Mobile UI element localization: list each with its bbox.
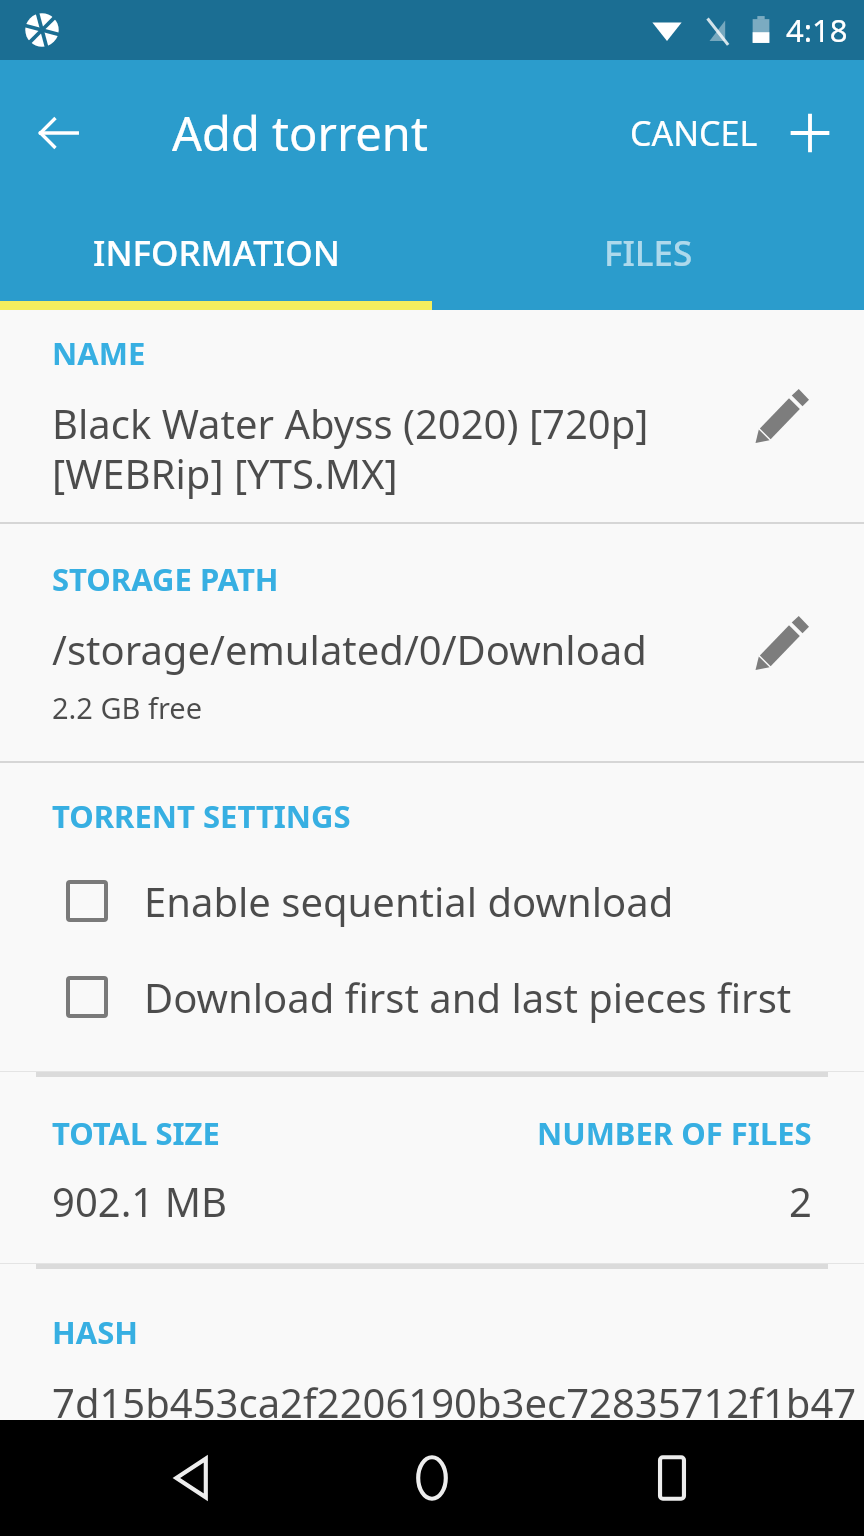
- button[interactable]: Recent apps: [624, 1430, 720, 1526]
- staticText: 7d15b453ca2f2206190b3ec72835712f1b4752: [52, 1375, 864, 1420]
- staticText: HASH: [52, 1311, 138, 1353]
- staticText: 902.1 MB: [52, 1174, 227, 1228]
- staticText: TOTAL SIZE: [52, 1112, 220, 1154]
- staticText: Black Water Abyss (2020) [720p] [WEBRip]…: [52, 396, 649, 501]
- staticText: 2.2 GB free: [52, 688, 203, 727]
- staticText: /storage/emulated/0/Download: [52, 622, 647, 676]
- button[interactable]: Back: [144, 1430, 240, 1526]
- staticText: FILES: [604, 229, 693, 277]
- staticText: 4:18: [786, 9, 848, 51]
- staticText: STORAGE PATH: [52, 558, 279, 600]
- button[interactable]: Add: [772, 95, 848, 171]
- button[interactable]: Home: [384, 1430, 480, 1526]
- staticText: NUMBER OF FILES: [537, 1112, 812, 1154]
- button[interactable]: STORAGE PATH: [0, 524, 864, 761]
- button[interactable]: Edit: [734, 368, 830, 464]
- staticText: Enable sequential download: [144, 874, 674, 928]
- staticText: INFORMATION: [93, 229, 340, 277]
- staticText: TORRENT SETTINGS: [52, 795, 351, 837]
- button[interactable]: FILES: [432, 205, 864, 301]
- button[interactable]: NAME: [0, 310, 864, 522]
- button[interactable]: Download first and last pieces first: [0, 949, 864, 1045]
- staticText: 2: [789, 1174, 812, 1228]
- staticText: CANCEL: [630, 110, 758, 156]
- staticText: Add torrent: [172, 101, 428, 165]
- button[interactable]: INFORMATION: [0, 205, 432, 301]
- staticText: NAME: [52, 332, 146, 374]
- button[interactable]: Back: [24, 99, 92, 167]
- staticText: Download first and last pieces first: [144, 970, 792, 1024]
- button[interactable]: Edit: [734, 595, 830, 691]
- button[interactable]: CANCEL: [616, 92, 772, 174]
- button[interactable]: Enable sequential download: [0, 853, 864, 949]
